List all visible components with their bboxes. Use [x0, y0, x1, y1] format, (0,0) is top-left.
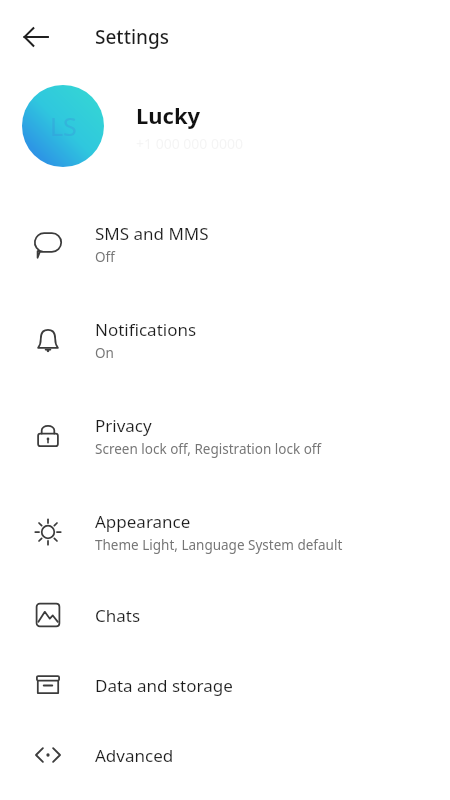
- staticText: +1 000 000 0000: [136, 134, 244, 153]
- staticText: Data and storage: [95, 674, 233, 697]
- button[interactable]: LS: [0, 74, 450, 178]
- button[interactable]: Appearance: [0, 484, 450, 580]
- staticText: Chats: [95, 604, 141, 627]
- staticText: Advanced: [95, 744, 174, 767]
- button[interactable]: Privacy: [0, 388, 450, 484]
- staticText: Theme Light, Language System default: [95, 536, 343, 554]
- button[interactable]: Data and storage: [0, 650, 450, 720]
- staticText: On: [95, 344, 114, 362]
- staticText: Appearance: [95, 510, 191, 533]
- button[interactable]: Back: [10, 11, 62, 63]
- staticText: LS: [50, 109, 77, 143]
- button[interactable]: Chats: [0, 580, 450, 650]
- staticText: Settings: [95, 24, 169, 50]
- staticText: Screen lock off, Registration lock off: [95, 440, 322, 458]
- button[interactable]: Notifications: [0, 292, 450, 388]
- staticText: Notifications: [95, 318, 197, 341]
- button[interactable]: SMS and MMS: [0, 196, 450, 292]
- staticText: Off: [95, 248, 115, 266]
- staticText: Privacy: [95, 414, 152, 437]
- button[interactable]: Advanced: [0, 720, 450, 790]
- staticText: Lucky: [136, 100, 201, 130]
- staticText: SMS and MMS: [95, 222, 209, 245]
